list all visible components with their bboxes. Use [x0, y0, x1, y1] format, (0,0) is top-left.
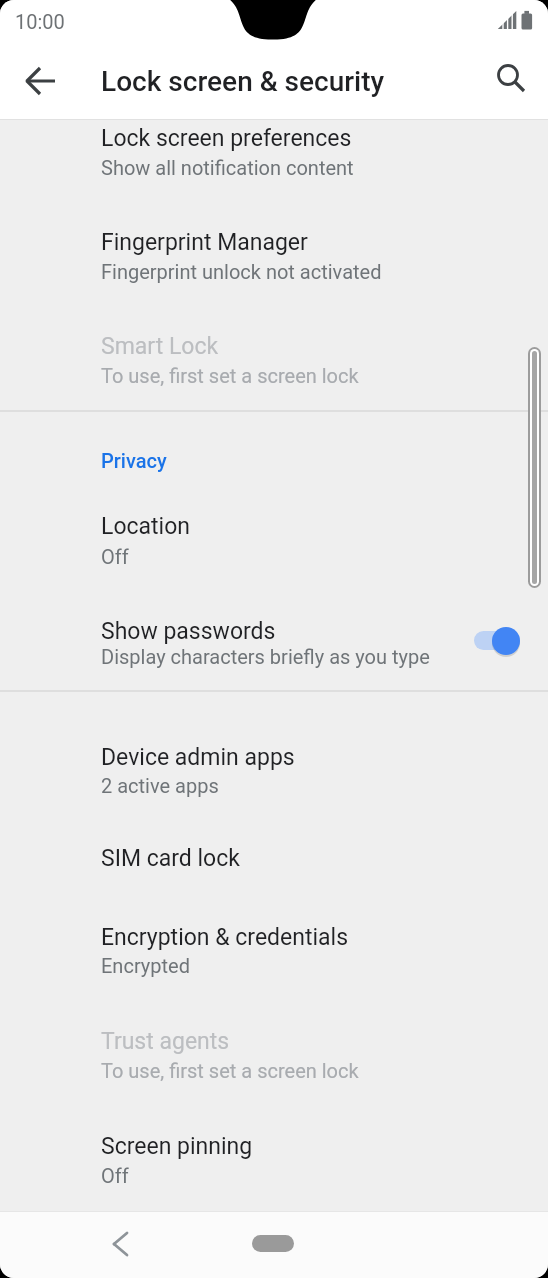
button[interactable]: [0, 190, 548, 294]
staticText: Device admin apps: [101, 744, 295, 771]
button[interactable]: [0, 579, 548, 683]
button[interactable]: [474, 631, 520, 650]
staticText: Encrypted: [101, 954, 190, 977]
staticText: To use, first set a screen lock: [101, 364, 359, 387]
staticText: Lock screen preferences: [101, 125, 352, 152]
staticText: Encryption & credentials: [101, 924, 349, 951]
staticText: Lock screen & security: [101, 65, 385, 98]
staticText: 10:00: [15, 10, 65, 33]
button[interactable]: [0, 1094, 548, 1198]
button[interactable]: [0, 705, 548, 809]
button[interactable]: [0, 474, 548, 578]
button[interactable]: [0, 810, 548, 906]
staticText: 2 active apps: [101, 774, 219, 797]
staticText: Fingerprint Manager: [101, 229, 308, 256]
staticText: SIM card lock: [101, 845, 240, 872]
staticText: Display characters briefly as you type: [101, 645, 430, 668]
staticText: Show all notification content: [101, 156, 354, 179]
staticText: To use, first set a screen lock: [101, 1059, 359, 1082]
staticText: Off: [101, 1164, 129, 1187]
staticText: Location: [101, 513, 190, 540]
button[interactable]: [485, 51, 533, 99]
button[interactable]: [0, 885, 548, 989]
staticText: Privacy: [101, 449, 167, 472]
button[interactable]: [252, 1235, 294, 1252]
staticText: Screen pinning: [101, 1133, 253, 1160]
staticText: Show passwords: [101, 618, 276, 645]
button[interactable]: [96, 1220, 144, 1268]
button[interactable]: [0, 86, 548, 190]
staticText: Smart Lock: [101, 333, 219, 360]
staticText: Fingerprint unlock not activated: [101, 260, 382, 283]
staticText: Off: [101, 545, 129, 568]
staticText: Trust agents: [101, 1028, 230, 1055]
button[interactable]: [16, 57, 64, 105]
